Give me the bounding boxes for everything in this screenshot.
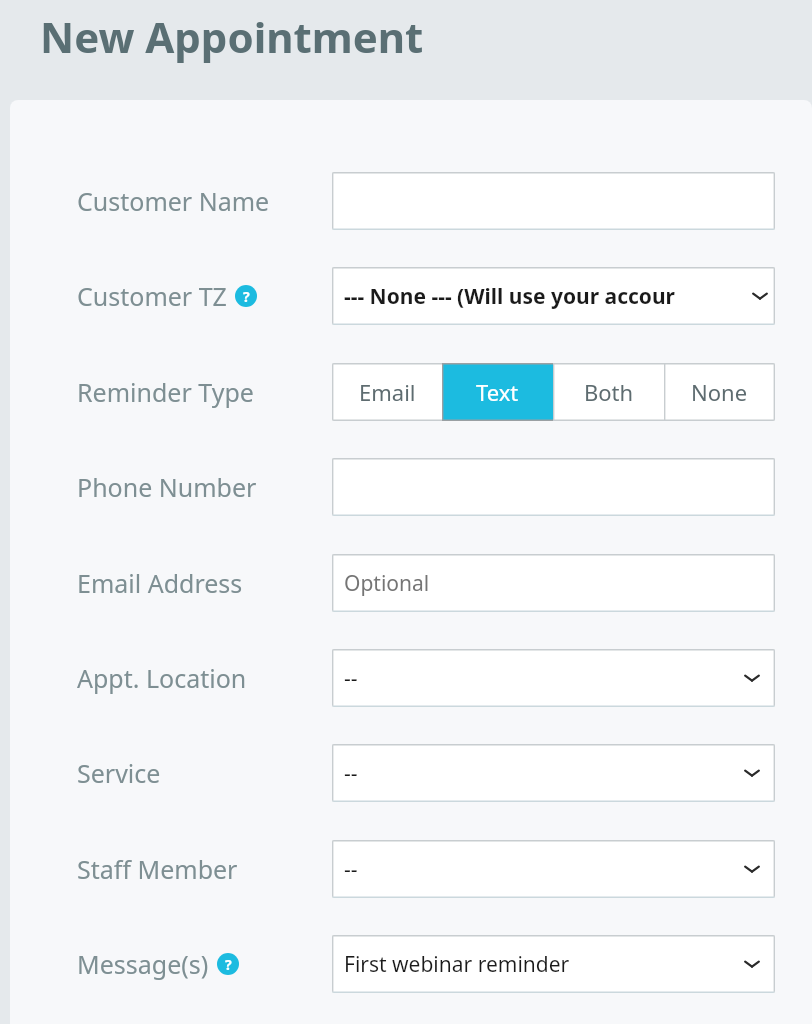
staticText: --: [344, 664, 358, 693]
button[interactable]: Text: [442, 363, 553, 421]
staticText: None: [691, 377, 748, 407]
button[interactable]: --: [332, 744, 775, 802]
button[interactable]: --: [332, 840, 775, 898]
staticText: ?: [225, 955, 232, 974]
staticText: First webinar reminder: [344, 950, 570, 979]
staticText: --- None --- (Will use your accour: [344, 282, 675, 311]
button[interactable]: [332, 458, 775, 516]
button[interactable]: Help: [217, 953, 239, 975]
staticText: Message(s): [77, 947, 209, 981]
button[interactable]: First webinar reminder: [332, 935, 775, 993]
staticText: Customer Name: [77, 184, 270, 218]
staticText: ?: [243, 287, 250, 306]
staticText: --: [344, 759, 358, 788]
staticText: Customer TZ: [77, 279, 227, 313]
staticText: Email: [359, 377, 416, 407]
staticText: Text: [476, 377, 519, 407]
staticText: Email Address: [77, 566, 243, 600]
staticText: Optional: [344, 569, 430, 598]
staticText: Service: [77, 756, 161, 790]
button[interactable]: Help: [235, 285, 257, 307]
button[interactable]: Email: [332, 363, 442, 421]
staticText: Staff Member: [77, 852, 238, 886]
staticText: Phone Number: [77, 470, 257, 504]
button[interactable]: Optional: [332, 554, 775, 612]
staticText: Both: [584, 377, 634, 407]
button[interactable]: None: [664, 363, 775, 421]
button[interactable]: --- None --- (Will use your accour: [332, 267, 775, 325]
button[interactable]: [332, 172, 775, 230]
staticText: Reminder Type: [77, 375, 254, 409]
staticText: --: [344, 855, 358, 884]
staticText: Appt. Location: [77, 661, 247, 695]
button[interactable]: --: [332, 649, 775, 707]
button[interactable]: Both: [553, 363, 664, 421]
staticText: New Appointment: [40, 8, 424, 65]
